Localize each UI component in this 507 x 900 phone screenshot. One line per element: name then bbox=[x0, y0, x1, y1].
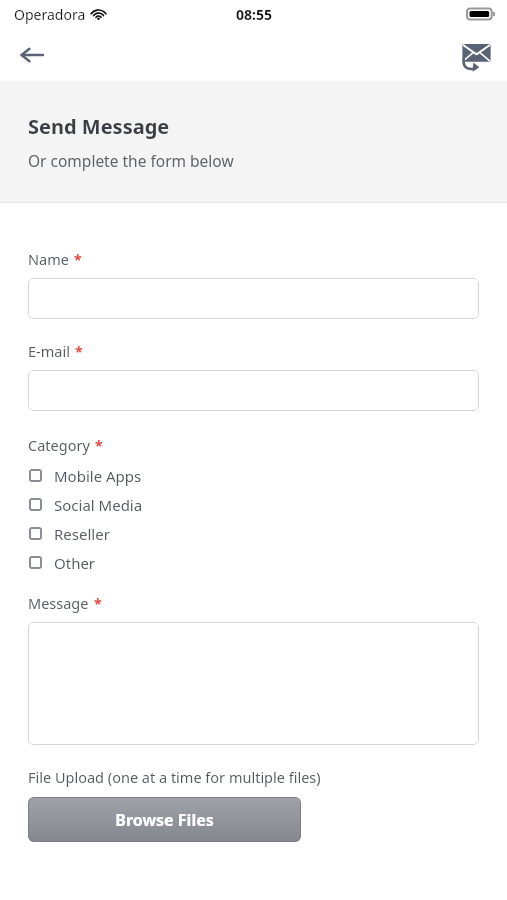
button[interactable]: Browse Files bbox=[28, 797, 301, 842]
staticText: * bbox=[95, 436, 103, 455]
staticText: E-mail bbox=[28, 341, 70, 361]
staticText: * bbox=[74, 250, 82, 269]
button[interactable]: Reseller bbox=[28, 519, 479, 548]
staticText: * bbox=[94, 594, 102, 613]
button[interactable]: Social Media bbox=[28, 490, 479, 519]
button[interactable] bbox=[28, 370, 479, 411]
staticText: Message bbox=[28, 593, 89, 613]
button[interactable]: Back bbox=[8, 31, 56, 79]
staticText: Category bbox=[28, 435, 90, 455]
button[interactable]: Other bbox=[28, 548, 479, 577]
staticText: Other bbox=[54, 553, 96, 573]
staticText: Operadora bbox=[14, 5, 86, 24]
button[interactable] bbox=[28, 278, 479, 319]
staticText: Social Media bbox=[54, 495, 143, 515]
button[interactable]: Send message bbox=[452, 31, 500, 79]
button[interactable] bbox=[28, 622, 479, 745]
staticText: * bbox=[75, 342, 83, 361]
staticText: Send Message bbox=[28, 113, 170, 140]
staticText: Mobile Apps bbox=[54, 466, 142, 486]
staticText: Browse Files bbox=[115, 809, 214, 831]
staticText: Or complete the form below bbox=[28, 150, 234, 171]
staticText: Name bbox=[28, 249, 69, 269]
staticText: 08:55 bbox=[236, 5, 272, 24]
button[interactable]: Mobile Apps bbox=[28, 461, 479, 490]
staticText: Reseller bbox=[54, 524, 110, 544]
staticText: File Upload (one at a time for multiple … bbox=[28, 767, 321, 787]
